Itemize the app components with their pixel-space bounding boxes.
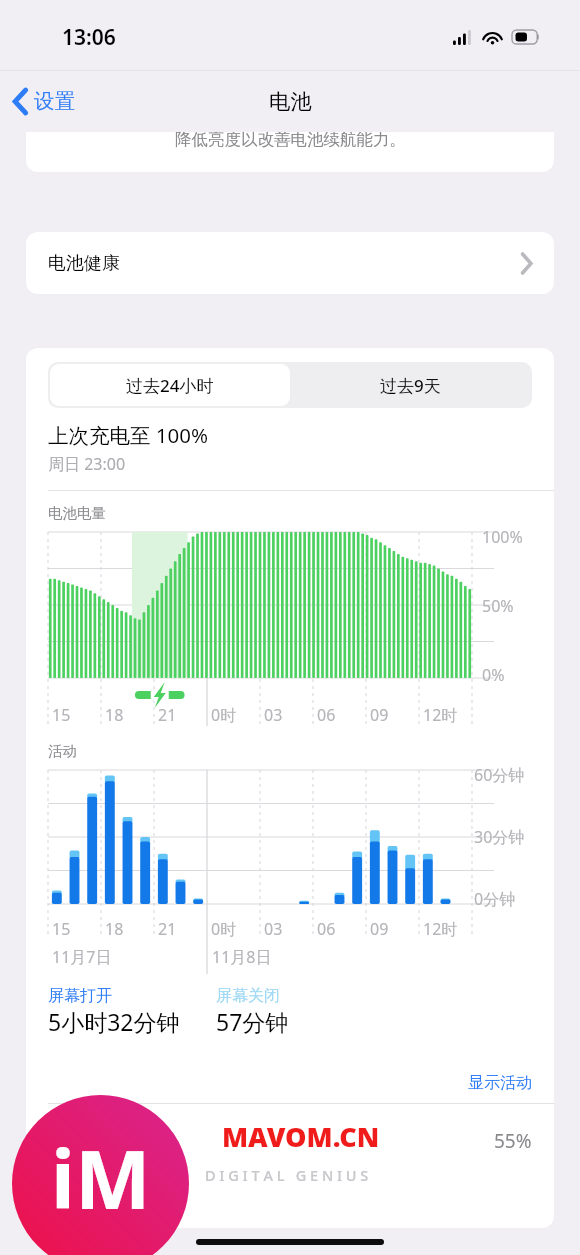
- staticText: 电池健康: [48, 252, 120, 275]
- staticText: 屏幕打开: [48, 986, 112, 1006]
- staticText: 12时: [423, 918, 458, 940]
- button[interactable]: 显示活动: [26, 1063, 554, 1103]
- staticText: 100%: [482, 526, 523, 548]
- staticText: 12时: [423, 704, 458, 726]
- staticText: 0时: [211, 704, 237, 726]
- staticText: 11月7日: [52, 946, 112, 968]
- staticText: 0%: [482, 664, 505, 686]
- staticText: 屏幕关闭: [216, 986, 280, 1006]
- staticText: 15: [52, 918, 71, 940]
- staticText: 0分钟: [474, 888, 516, 910]
- staticText: 降低亮度以改善电池续航能力。: [175, 132, 406, 150]
- staticText: 15: [52, 704, 71, 726]
- staticText: 上次充电至 100%: [48, 421, 209, 449]
- staticText: 09: [370, 704, 389, 726]
- staticText: 60分钟: [474, 764, 525, 786]
- staticText: 06: [317, 918, 336, 940]
- staticText: 活动: [48, 1130, 84, 1153]
- staticText: 过去9天: [380, 374, 441, 397]
- staticText: 18: [105, 918, 124, 940]
- button[interactable]: 设置: [0, 80, 85, 122]
- staticText: 18: [105, 704, 124, 726]
- staticText: 03: [264, 918, 283, 940]
- staticText: 06: [317, 704, 336, 726]
- staticText: 0时: [211, 918, 237, 940]
- staticText: 活动: [48, 742, 77, 760]
- staticText: iM: [51, 1123, 151, 1232]
- staticText: 电池: [269, 88, 312, 115]
- button[interactable]: 降低亮度以改善电池续航能力。: [26, 132, 554, 172]
- staticText: 21: [158, 704, 177, 726]
- staticText: D I G I T A L G E N I U S: [205, 1165, 369, 1185]
- staticText: 21: [158, 918, 177, 940]
- staticText: 显示活动: [468, 1073, 532, 1093]
- staticText: 57分钟: [216, 1006, 289, 1037]
- staticText: 11月8日: [212, 946, 272, 968]
- staticText: 55%: [494, 1128, 532, 1154]
- other: Battery health: [521, 254, 532, 273]
- staticText: 设置: [34, 88, 75, 114]
- staticText: 电池电量: [48, 504, 106, 522]
- button[interactable]: 电池健康: [26, 232, 554, 294]
- button[interactable]: 过去24小时: [50, 364, 290, 406]
- staticText: 50%: [482, 595, 514, 617]
- staticText: 过去24小时: [126, 374, 214, 397]
- button[interactable]: 过去9天: [290, 364, 530, 406]
- staticText: MAVOM.CN: [222, 1118, 380, 1155]
- staticText: 30分钟: [474, 826, 525, 848]
- button[interactable]: 活动: [26, 1104, 554, 1178]
- staticText: 09: [370, 918, 389, 940]
- staticText: 13:06: [62, 23, 116, 52]
- staticText: 5小时32分钟: [48, 1006, 180, 1037]
- staticText: 03: [264, 704, 283, 726]
- staticText: 周日 23:00: [48, 453, 126, 475]
